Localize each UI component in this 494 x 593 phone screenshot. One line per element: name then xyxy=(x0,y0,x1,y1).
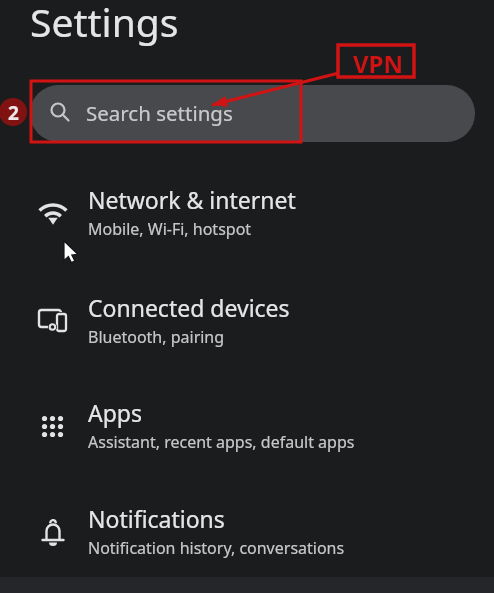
staticText: Network & internet xyxy=(88,184,296,215)
staticText: VPN xyxy=(353,47,404,80)
staticText: Bluetooth, pairing xyxy=(88,326,225,348)
staticText: Notifications xyxy=(88,503,225,534)
staticText: Search settings xyxy=(86,99,233,127)
staticText: Connected devices xyxy=(88,292,290,323)
button[interactable]: Connected devices xyxy=(0,278,494,372)
staticText: Mobile, Wi-Fi, hotspot xyxy=(88,218,252,240)
staticText: 2 xyxy=(8,100,19,126)
button[interactable]: Notifications xyxy=(0,489,494,583)
button[interactable]: Network & internet xyxy=(0,170,494,264)
staticText: Apps xyxy=(88,397,143,428)
staticText: Notification history, conversations xyxy=(88,537,345,559)
staticText: Assistant, recent apps, default apps xyxy=(88,431,355,453)
button[interactable]: Apps xyxy=(0,383,494,477)
staticText: Settings xyxy=(30,0,179,48)
button[interactable]: Search settings xyxy=(30,85,475,142)
